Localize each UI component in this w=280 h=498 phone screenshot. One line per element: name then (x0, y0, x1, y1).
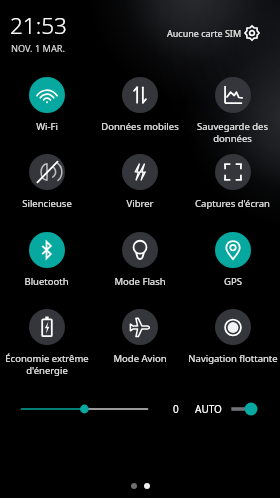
staticText: Vibrer (126, 197, 154, 210)
staticText: Wi-Fi (36, 120, 58, 133)
staticText: Bluetooth (24, 275, 69, 288)
staticText: Économie extrême d'énergie (5, 352, 89, 377)
staticText: Données mobiles (101, 120, 179, 133)
staticText: NOV. 1 MAR. (11, 42, 65, 55)
staticText: Silencieuse (22, 197, 72, 210)
button[interactable]: Sauvegarde des données (186, 77, 279, 145)
button[interactable]: GPS (186, 232, 279, 288)
staticText: Captures d'écran (195, 197, 270, 210)
staticText: 0 (173, 402, 179, 416)
button[interactable]: Wi-Fi (0, 77, 93, 133)
staticText: AUTO (195, 402, 222, 416)
button[interactable]: Vibrer (93, 154, 186, 210)
button[interactable]: Brightness slider (0, 398, 280, 420)
button[interactable]: Données mobiles (93, 77, 186, 133)
button[interactable]: Navigation flottante (186, 309, 279, 365)
button[interactable]: AUTO (195, 402, 222, 416)
button[interactable]: Économie extrême d'énergie (0, 309, 93, 377)
staticText: Aucune carte SIM (167, 27, 242, 39)
staticText: GPS (224, 275, 242, 288)
staticText: Navigation flottante (188, 352, 278, 365)
button[interactable]: Settings (243, 24, 260, 41)
button[interactable]: Mode Avion (93, 309, 186, 365)
staticText: Mode Flash (114, 275, 166, 288)
button[interactable]: Auto brightness (229, 400, 259, 418)
button[interactable]: Silencieuse (0, 154, 93, 210)
button[interactable]: Captures d'écran (186, 154, 279, 210)
staticText: Mode Avion (113, 352, 167, 365)
button[interactable]: Mode Flash (93, 232, 186, 288)
staticText: 21:53 (10, 10, 67, 41)
button[interactable]: Bluetooth (0, 232, 93, 288)
staticText: Sauvegarde des données (197, 120, 268, 145)
